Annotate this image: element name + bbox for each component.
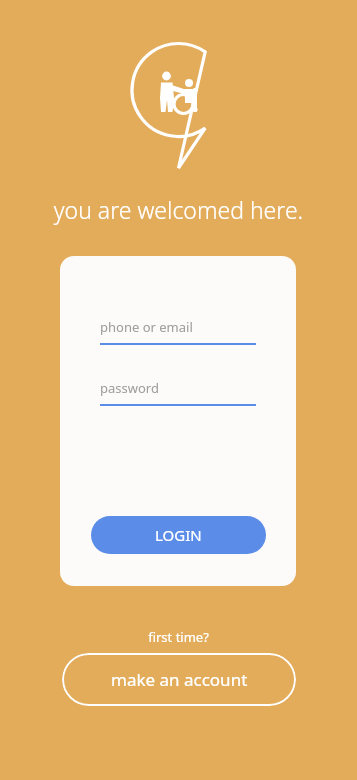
button[interactable]: password <box>100 379 256 406</box>
button[interactable]: Make an account <box>62 653 296 706</box>
staticText: phone or email <box>100 318 193 336</box>
staticText: first time? <box>0 628 357 646</box>
staticText: make an account <box>111 668 248 691</box>
staticText: you are welcomed here. <box>0 194 357 225</box>
button[interactable]: LOGIN <box>91 516 266 554</box>
staticText: LOGIN <box>155 525 202 545</box>
staticText: password <box>100 379 159 397</box>
button[interactable]: phone or email <box>100 318 256 345</box>
